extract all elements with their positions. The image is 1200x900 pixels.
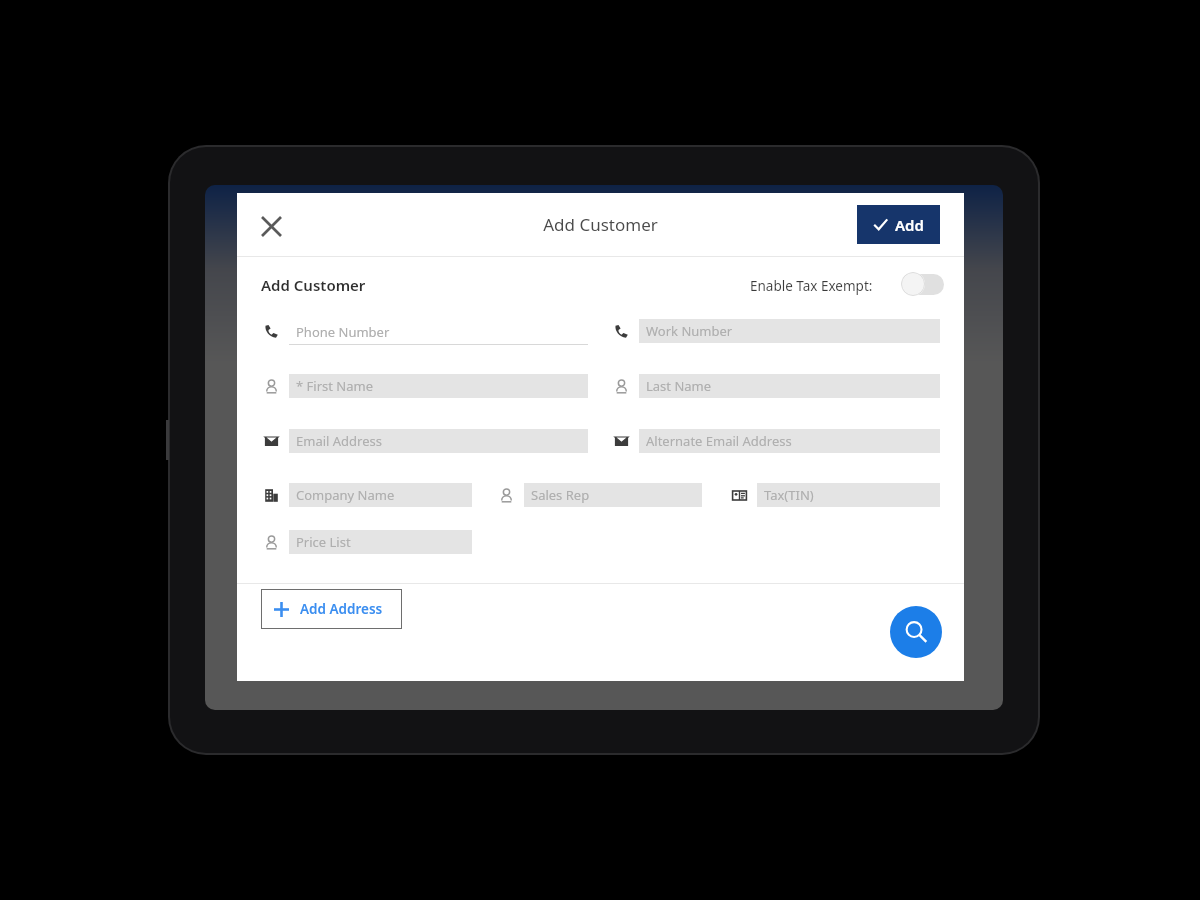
button[interactable]: Search [890,606,942,658]
staticText: Enable Tax Exempt: [750,277,873,295]
button[interactable]: Company Name [289,483,472,507]
button[interactable]: Close [251,206,291,246]
staticText: Work Number [646,322,733,340]
staticText: Phone Number [296,323,390,341]
staticText: Sales Rep [531,486,590,504]
staticText: Email Address [296,432,382,450]
button[interactable]: Alternate Email Address [639,429,940,453]
staticText: Add Customer [261,275,366,295]
button[interactable]: Tax(TIN) [757,483,940,507]
staticText: Alternate Email Address [646,432,792,450]
button[interactable]: Price List [289,530,472,554]
button[interactable]: Last Name [639,374,940,398]
staticText: Tax(TIN) [764,486,814,504]
staticText: Last Name [646,377,712,395]
button[interactable]: Add [857,205,940,244]
button[interactable]: Enable Tax Exempt [900,271,946,297]
staticText: Add [895,215,924,235]
staticText: Add Customer [543,213,658,236]
staticText: Price List [296,533,351,551]
button[interactable]: Phone Number [289,319,588,345]
button[interactable]: Email Address [289,429,588,453]
button[interactable]: Sales Rep [524,483,702,507]
staticText: * First Name [296,377,373,395]
staticText: Add Address [300,600,383,618]
button[interactable]: Add Address [261,589,402,629]
button[interactable]: Work Number [639,319,940,343]
staticText: Company Name [296,486,395,504]
button[interactable]: * First Name [289,374,588,398]
